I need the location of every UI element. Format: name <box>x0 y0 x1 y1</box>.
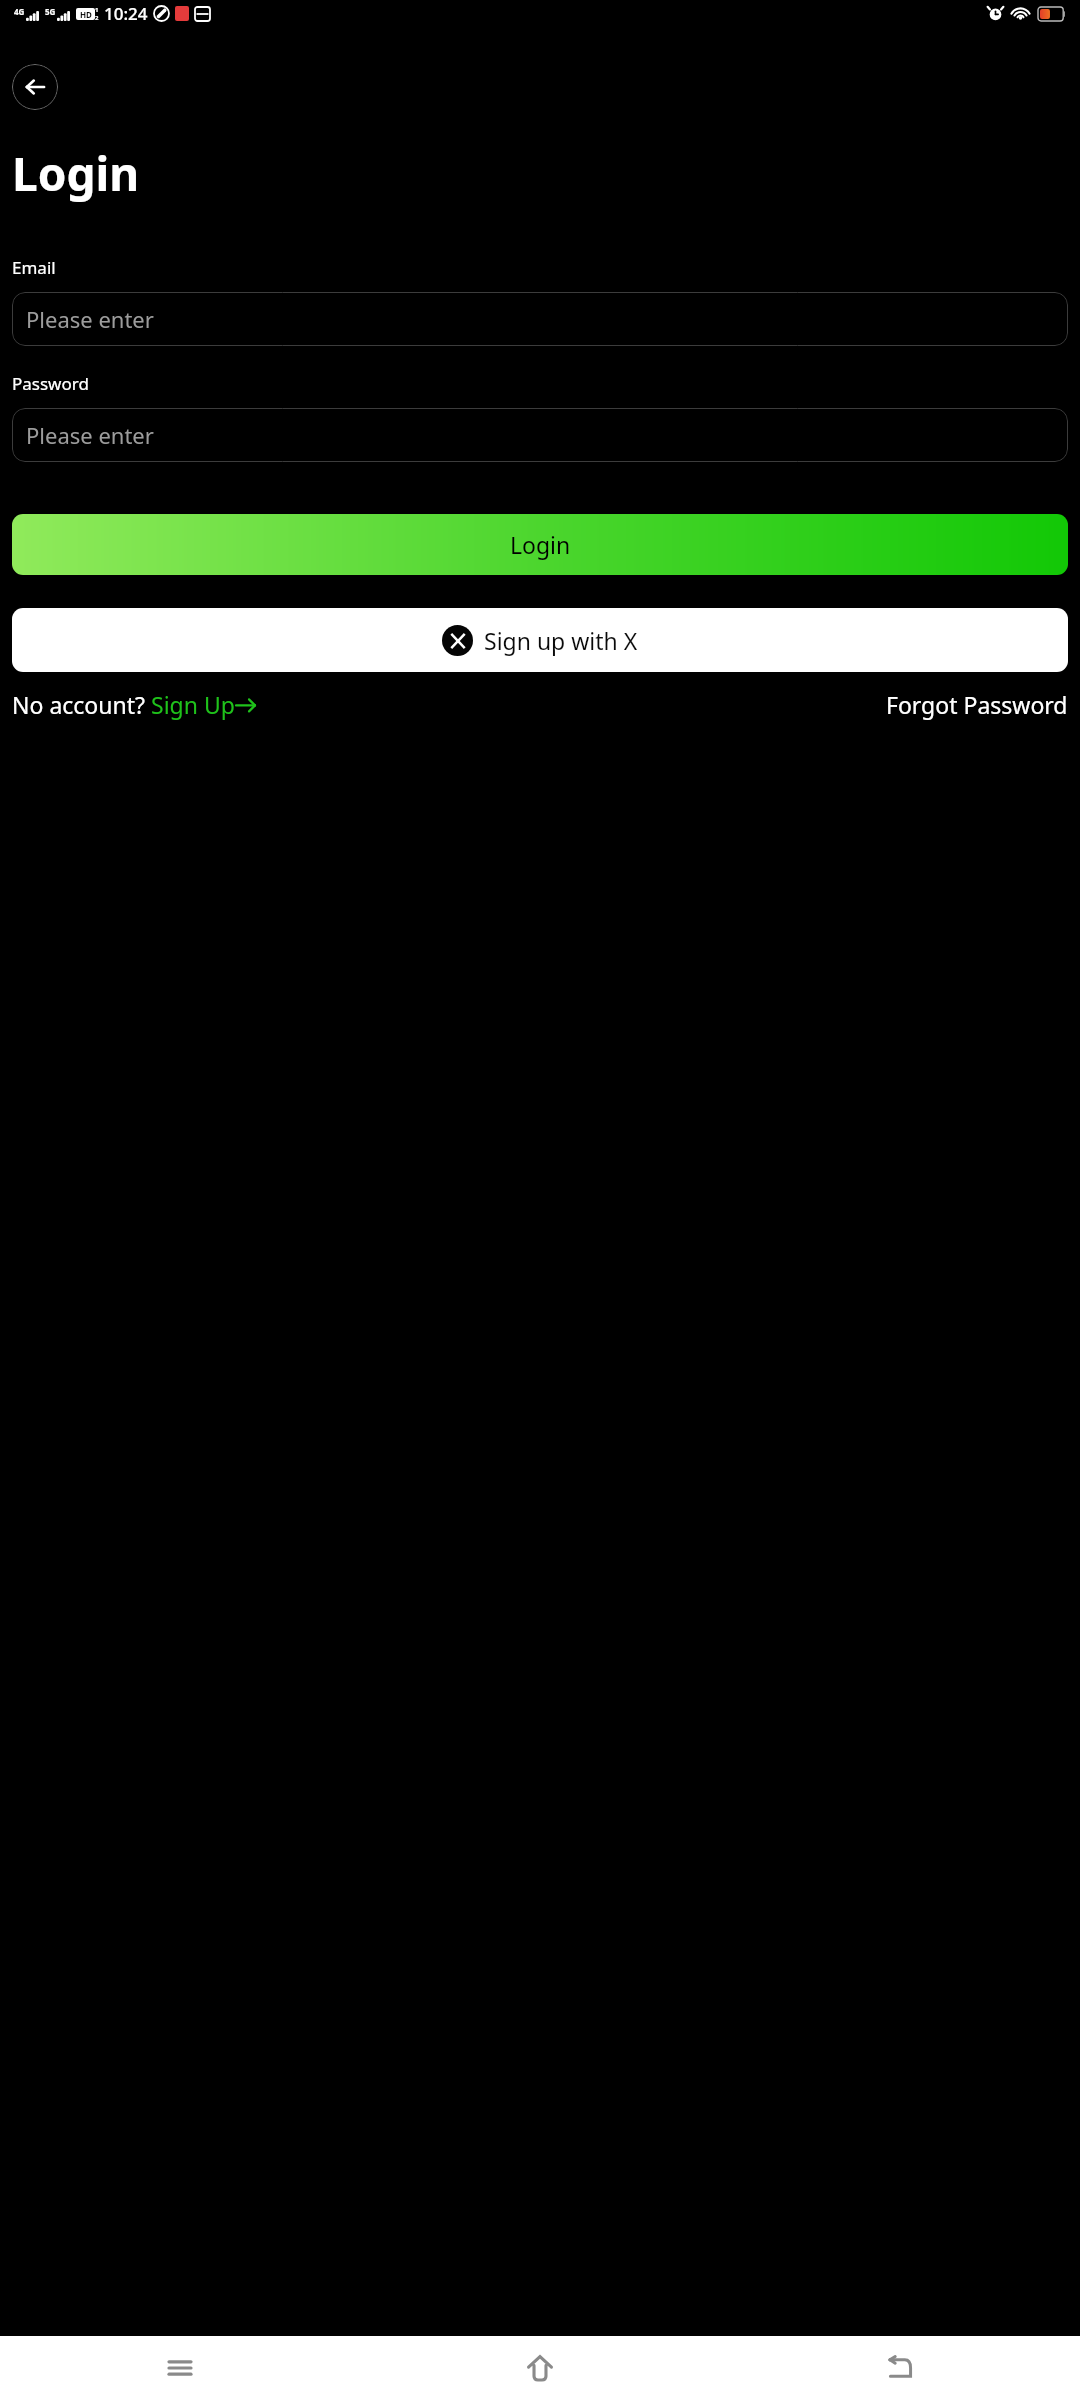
button[interactable]: Please enter <box>12 408 1068 462</box>
staticText: 10:24 <box>104 2 148 25</box>
staticText: No account? <box>12 689 151 720</box>
staticText: 5G <box>45 6 56 17</box>
button[interactable]: Home <box>510 2338 570 2398</box>
staticText: 2 <box>95 14 99 22</box>
button[interactable]: Login <box>12 514 1068 575</box>
button[interactable]: Forgot Password <box>886 689 1068 720</box>
staticText: Please enter <box>26 420 154 450</box>
staticText: 1 <box>95 6 99 14</box>
button[interactable]: Back <box>12 64 58 110</box>
button[interactable]: No account? <box>12 689 257 720</box>
staticText: Sign up with X <box>484 625 638 656</box>
button[interactable]: Recent apps <box>150 2338 210 2398</box>
staticText: HD <box>80 9 92 20</box>
staticText: Email <box>12 256 56 279</box>
staticText: Password <box>12 372 89 395</box>
button[interactable]: Back <box>870 2338 930 2398</box>
staticText: Login <box>12 142 140 205</box>
button[interactable]: Please enter <box>12 292 1068 346</box>
staticText: Login <box>510 529 571 560</box>
staticText: 4G <box>14 6 25 17</box>
staticText: Please enter <box>26 304 154 334</box>
button[interactable]: Sign up with X <box>12 608 1068 672</box>
staticText: Sign Up <box>151 689 235 720</box>
